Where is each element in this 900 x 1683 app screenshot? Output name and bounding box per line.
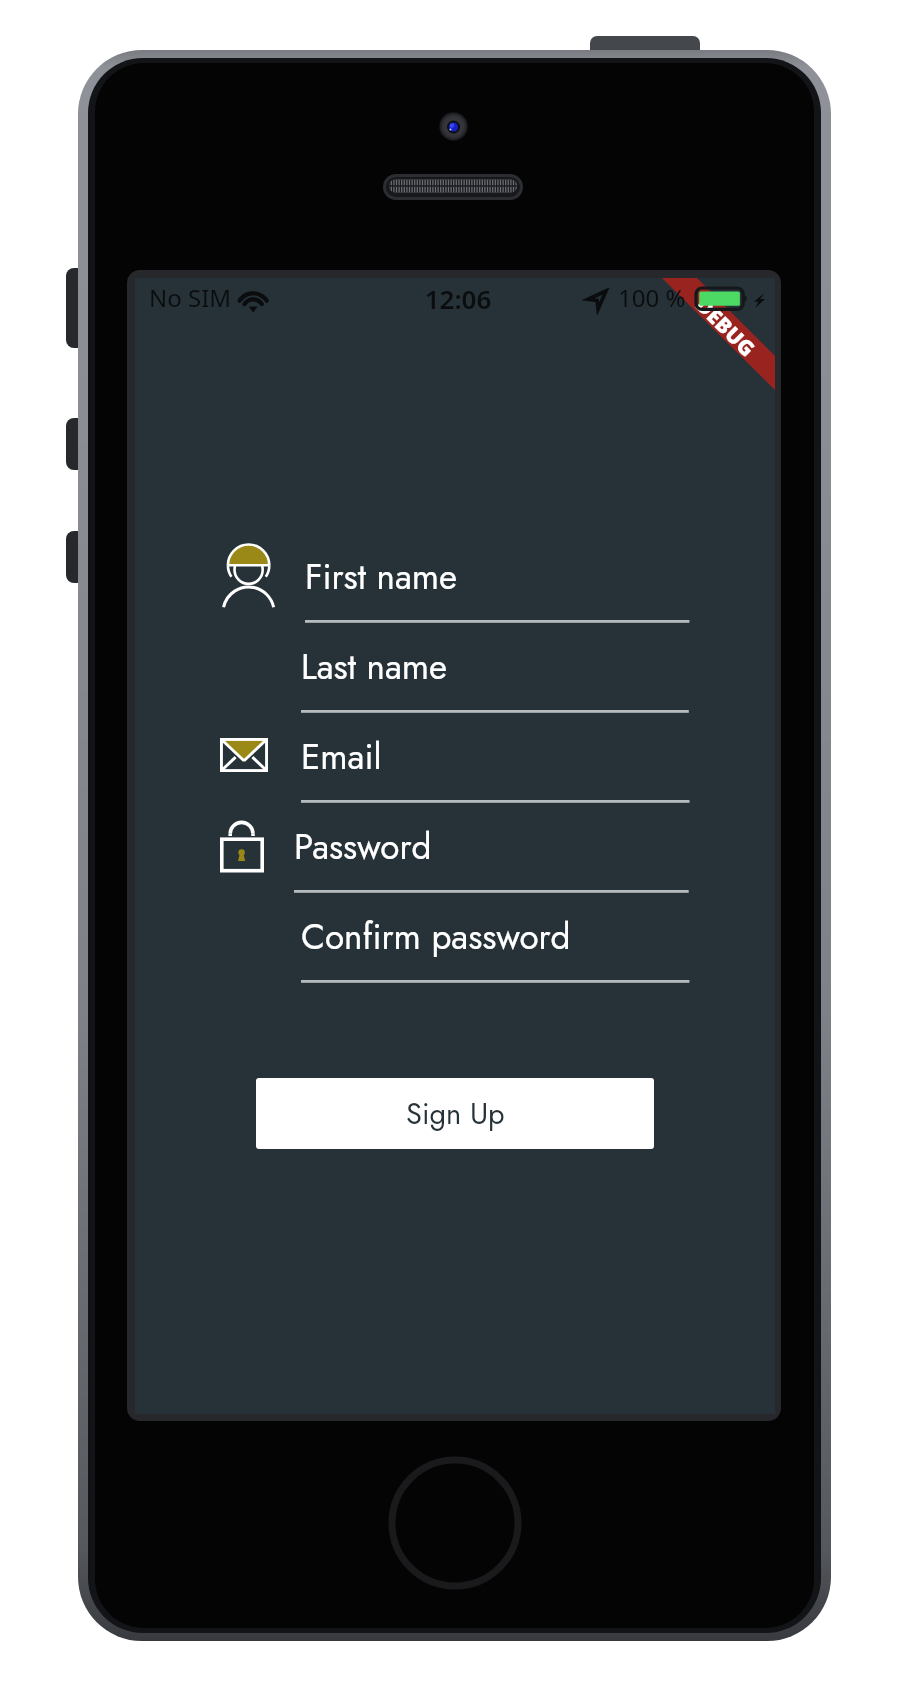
other: Password (220, 817, 264, 873)
staticText: No SIM (149, 281, 232, 314)
other: Name (223, 538, 279, 610)
staticText: 100 % (618, 281, 686, 314)
button[interactable]: Email (301, 740, 690, 803)
staticText: Sign Up (406, 1093, 505, 1135)
staticText: First name (305, 552, 458, 603)
staticText: DEBUG (693, 291, 762, 360)
staticText: Password (294, 822, 432, 873)
button[interactable]: First name (305, 560, 689, 623)
button[interactable]: Password (294, 830, 689, 893)
other: Email (220, 738, 268, 772)
staticText: Email (301, 732, 382, 783)
button[interactable]: Confirm password (301, 920, 689, 983)
staticText: 12:06 (138, 281, 778, 316)
staticText: Last name (301, 642, 448, 693)
staticText: Confirm password (301, 912, 571, 963)
button[interactable]: Sign Up (256, 1078, 654, 1149)
button[interactable]: Last name (301, 650, 689, 713)
